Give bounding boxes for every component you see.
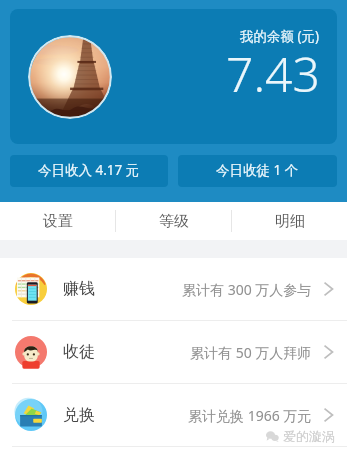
staticText: 今日收入 4.17 元 bbox=[38, 161, 140, 179]
button[interactable]: 赚钱 bbox=[0, 258, 347, 320]
staticText: 今日收徒 1 个 bbox=[216, 161, 299, 179]
button[interactable]: 明细 bbox=[232, 202, 347, 240]
staticText: 我的余额 (元) bbox=[240, 27, 320, 45]
button[interactable]: 今日收入 4.17 元 bbox=[10, 155, 168, 187]
staticText: 爱的漩涡 bbox=[283, 428, 335, 444]
staticText: 收徒 bbox=[63, 342, 95, 362]
button[interactable]: Profile avatar bbox=[28, 35, 112, 119]
button[interactable]: 设置 bbox=[0, 202, 115, 240]
button[interactable]: 兑换 bbox=[0, 384, 347, 446]
staticText: 赚钱 bbox=[63, 279, 95, 299]
button[interactable]: Profile avatar bbox=[10, 9, 337, 144]
staticText: 兑换 bbox=[63, 405, 95, 425]
button[interactable]: 今日收徒 1 个 bbox=[178, 155, 337, 187]
staticText: 累计兑换 1966 万元 bbox=[188, 406, 312, 425]
button[interactable]: 收徒 bbox=[0, 321, 347, 383]
staticText: 累计有 300 万人参与 bbox=[182, 280, 312, 299]
staticText: 累计有 50 万人拜师 bbox=[190, 343, 312, 362]
staticText: 等级 bbox=[159, 212, 189, 231]
button[interactable]: 等级 bbox=[116, 202, 231, 240]
staticText: 7.43 bbox=[226, 41, 320, 106]
staticText: 设置 bbox=[43, 212, 73, 231]
staticText: 明细 bbox=[275, 212, 305, 231]
